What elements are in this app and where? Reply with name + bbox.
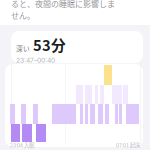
staticText: 53分 bbox=[33, 34, 66, 55]
staticText: 深い bbox=[16, 44, 30, 53]
staticText: ると、夜間の睡眠に影響しま bbox=[11, 0, 115, 9]
staticText: 23:47–00:40 bbox=[16, 56, 55, 64]
staticText: 07:01 起床 bbox=[116, 141, 140, 149]
staticText: せん。 bbox=[11, 9, 35, 21]
staticText: 23:04 入眠 bbox=[10, 141, 34, 149]
